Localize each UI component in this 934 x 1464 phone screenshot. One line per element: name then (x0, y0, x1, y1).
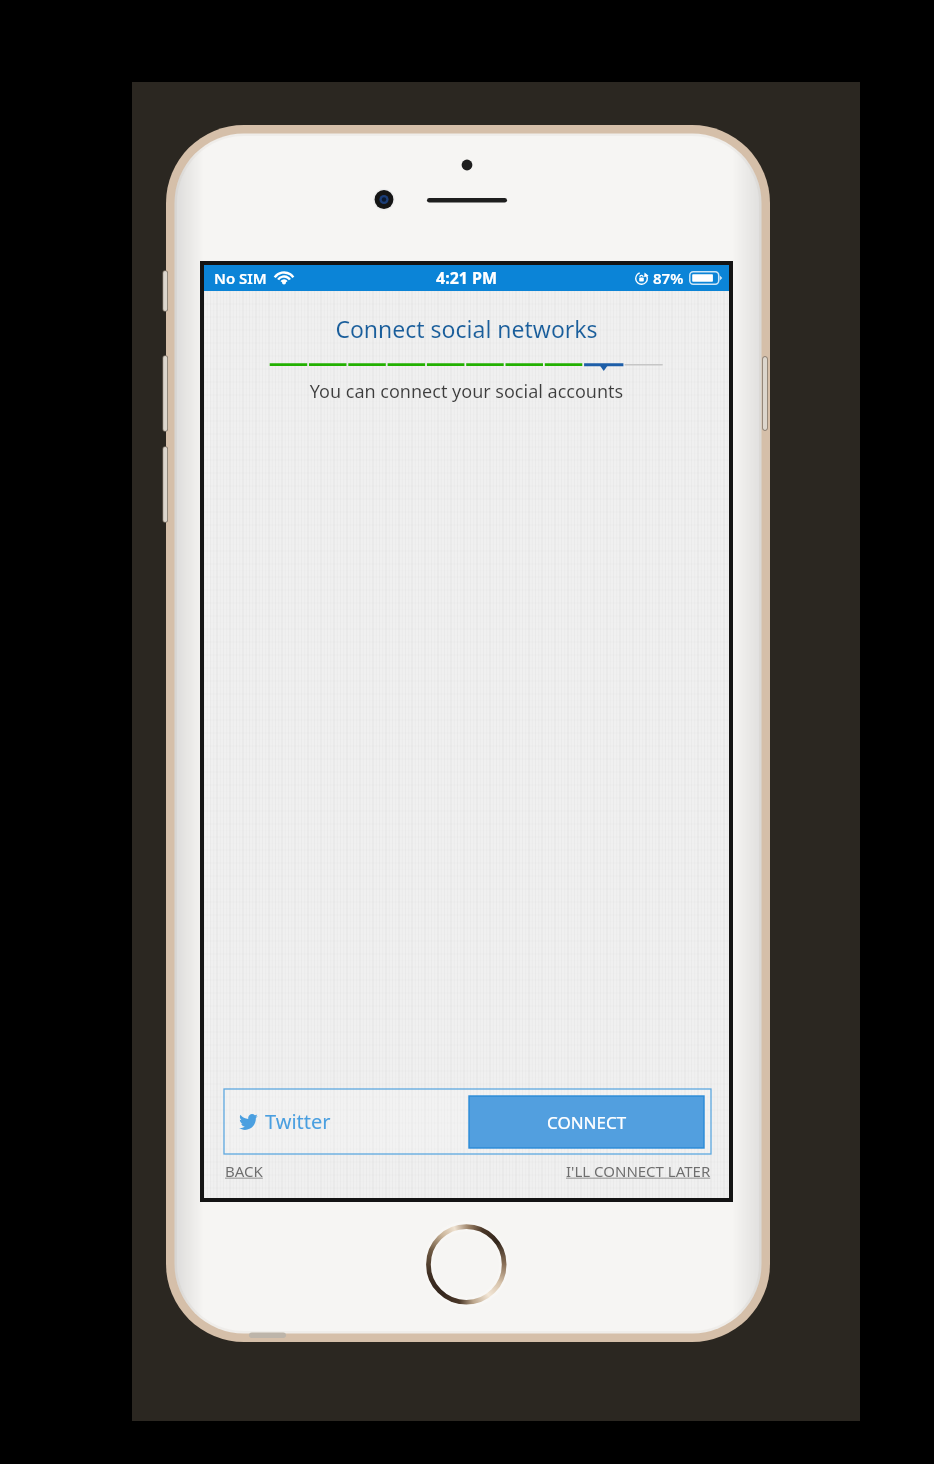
staticText: 87% (653, 268, 684, 288)
staticText: I'LL CONNECT LATER (566, 1161, 711, 1181)
staticText: 4:21 PM (436, 267, 498, 289)
button[interactable]: BACK (225, 1155, 271, 1189)
button[interactable]: Twitter (224, 1089, 469, 1154)
staticText: You can connect your social accounts (204, 379, 729, 404)
staticText: BACK (225, 1161, 263, 1181)
button[interactable]: I'LL CONNECT LATER (558, 1155, 711, 1189)
staticText: CONNECT (547, 1111, 627, 1134)
staticText: Connect social networks (204, 313, 729, 344)
other: Wi-Fi signal (274, 271, 294, 285)
staticText: No SIM (214, 268, 267, 288)
other: Rotation lock (635, 272, 648, 285)
staticText: Twitter (265, 1108, 331, 1135)
button[interactable]: CONNECT (469, 1096, 704, 1148)
